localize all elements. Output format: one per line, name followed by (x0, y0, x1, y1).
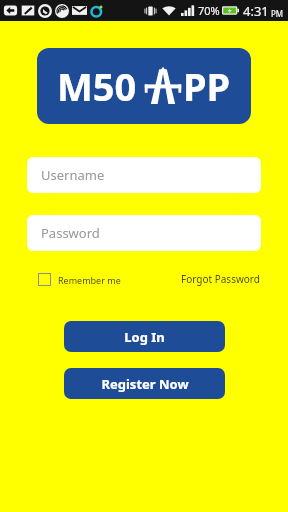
button[interactable]: M50 (37, 48, 251, 124)
staticText: Password (41, 224, 100, 242)
staticText: PM (271, 8, 284, 19)
staticText: 4:31 (243, 2, 269, 20)
button[interactable]: Password (27, 215, 261, 251)
staticText: Remember me (58, 274, 121, 286)
button[interactable]: Username (27, 157, 261, 193)
staticText: Forgot Password (181, 272, 260, 286)
button[interactable]: Log In (64, 321, 225, 352)
button[interactable]: Remember me (38, 273, 121, 286)
staticText: M50 (57, 60, 137, 112)
button[interactable]: Register Now (64, 368, 225, 399)
staticText: PP (183, 60, 231, 112)
staticText: Register Now (101, 375, 189, 393)
staticText: Log In (124, 328, 165, 346)
button[interactable]: Forgot Password (181, 272, 260, 286)
staticText: 70% (198, 3, 220, 18)
staticText: Username (41, 166, 105, 184)
